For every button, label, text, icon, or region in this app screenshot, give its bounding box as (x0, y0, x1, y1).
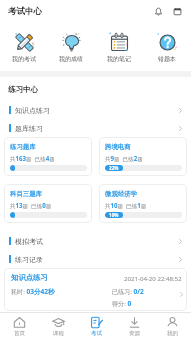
button[interactable]: 科目三题库 (4, 184, 92, 223)
staticText: 我的笔记 (107, 55, 131, 63)
button[interactable]: 我的成绩 (47, 22, 95, 71)
staticText: 知识点练习 (11, 273, 48, 282)
button[interactable]: 考试 (77, 313, 115, 340)
button[interactable]: 错题本 (143, 22, 191, 71)
staticText: 2021-04-20 22:48:52 (124, 274, 182, 282)
staticText: 资源 (129, 330, 140, 337)
staticText: 模拟考试 (15, 237, 43, 246)
staticText: 共163题 已练4题 (10, 154, 55, 162)
button[interactable]: Notifications (152, 5, 165, 18)
staticText: 练习记录 (15, 255, 43, 264)
staticText: 22% (109, 165, 119, 171)
staticText: 我的 (167, 330, 178, 337)
button[interactable]: 我的考试 (0, 22, 47, 71)
button[interactable]: 首页 (0, 313, 39, 340)
staticText: 已练习: 0/2 (112, 287, 144, 296)
button[interactable]: 知识点练习 (0, 101, 191, 119)
button[interactable]: 题库练习 (0, 119, 191, 137)
button[interactable]: 知识点练习 (4, 268, 187, 311)
button[interactable]: 我的笔记 (95, 22, 143, 71)
staticText: 考试 (91, 330, 102, 337)
staticText: 10% (109, 212, 119, 218)
staticText: 练习题库 (10, 143, 36, 151)
staticText: 科目三题库 (10, 190, 42, 198)
staticText: 共10题 已练1题 (105, 201, 147, 209)
staticText: 得分: 0 (112, 299, 132, 308)
staticText: 练习中心 (8, 85, 38, 94)
staticText: 考试中心 (8, 6, 42, 17)
staticText: 错题本 (158, 55, 176, 63)
staticText: 跨境电商 (105, 143, 131, 151)
staticText: 我的考试 (12, 55, 36, 63)
button[interactable]: 微观经济学 (99, 184, 187, 223)
staticText: 微观经济学 (105, 190, 137, 198)
staticText: 题库练习 (15, 124, 43, 133)
button[interactable]: 课程 (39, 313, 77, 340)
button[interactable]: Calendar (171, 5, 184, 18)
staticText: 共13题 已练0题 (10, 201, 52, 209)
button[interactable]: 练习记录 (0, 250, 191, 268)
button[interactable]: 模拟考试 (0, 232, 191, 250)
staticText: 耗时: 03分42秒 (11, 287, 55, 296)
button[interactable]: 我的 (153, 313, 191, 340)
button[interactable]: 跨境电商 (99, 137, 187, 176)
staticText: 课程 (53, 330, 64, 337)
button[interactable]: 练习题库 (4, 137, 92, 176)
staticText: 共9题 已练2题 (105, 154, 143, 162)
staticText: 我的成绩 (59, 55, 83, 63)
staticText: 知识点练习 (15, 106, 50, 115)
staticText: 首页 (14, 330, 25, 337)
button[interactable]: 资源 (115, 313, 153, 340)
